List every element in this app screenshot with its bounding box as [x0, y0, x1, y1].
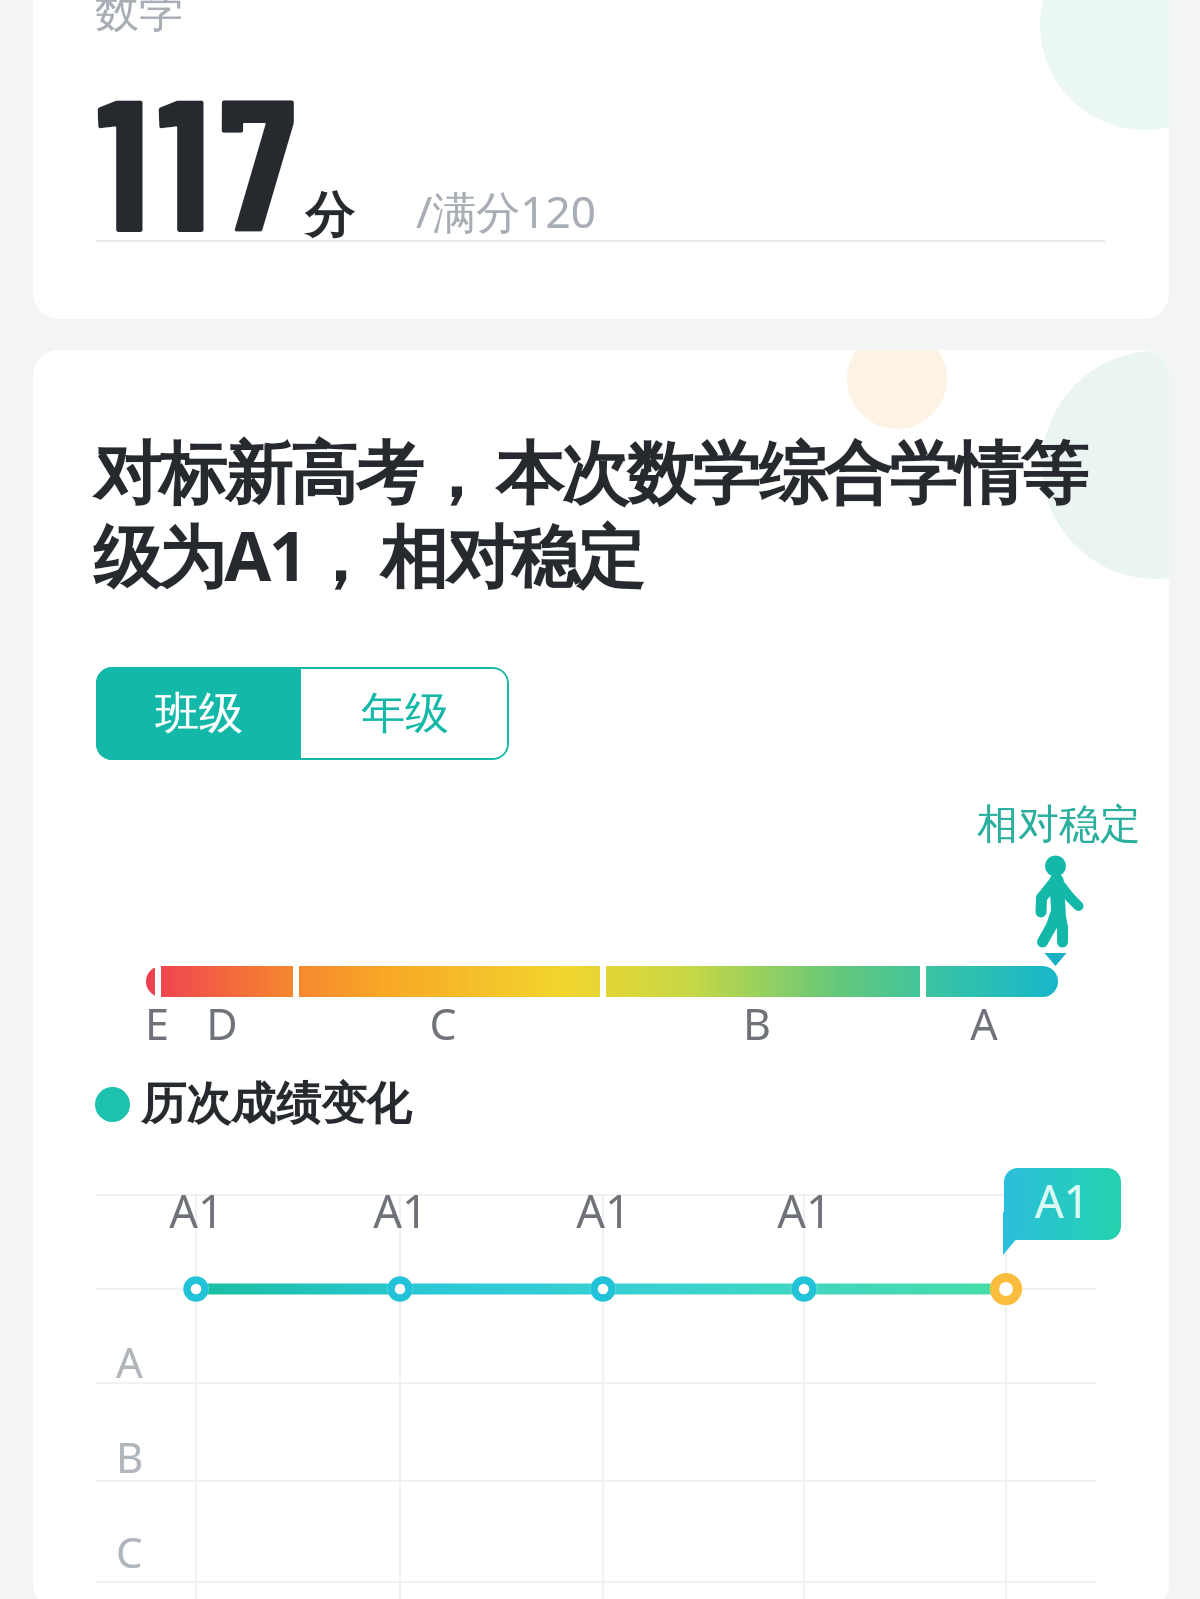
- staticText: 分: [305, 185, 354, 247]
- staticText: A1: [169, 1180, 224, 1241]
- staticText: 相对稳定: [977, 799, 1141, 851]
- staticText: C: [116, 1523, 143, 1580]
- staticText: 数学: [95, 0, 183, 39]
- staticText: 年级: [361, 686, 449, 741]
- staticText: /满分120: [416, 181, 596, 241]
- button[interactable]: A1: [1004, 1168, 1121, 1240]
- staticText: A1: [373, 1180, 428, 1241]
- button[interactable]: 年级: [301, 667, 509, 760]
- staticText: B: [743, 994, 771, 1053]
- staticText: E: [145, 994, 169, 1053]
- staticText: D: [206, 994, 238, 1053]
- staticText: A: [970, 994, 998, 1053]
- staticText: C: [429, 994, 457, 1053]
- staticText: 历次成绩变化: [141, 1076, 411, 1133]
- staticText: 对标新高考， 本次数学综合学情等 级为A1， 相对稳定: [93, 424, 1086, 601]
- other: Walking person indicator: [33, 350, 1169, 1599]
- staticText: A1: [1035, 1170, 1090, 1231]
- staticText: A1: [777, 1180, 832, 1241]
- staticText: B: [116, 1428, 144, 1485]
- staticText: A1: [576, 1180, 631, 1241]
- staticText: A: [116, 1333, 143, 1390]
- staticText: 117: [96, 44, 305, 270]
- staticText: 班级: [155, 686, 243, 741]
- button[interactable]: 历次成绩变化: [95, 1076, 411, 1133]
- button[interactable]: 班级: [96, 667, 301, 760]
